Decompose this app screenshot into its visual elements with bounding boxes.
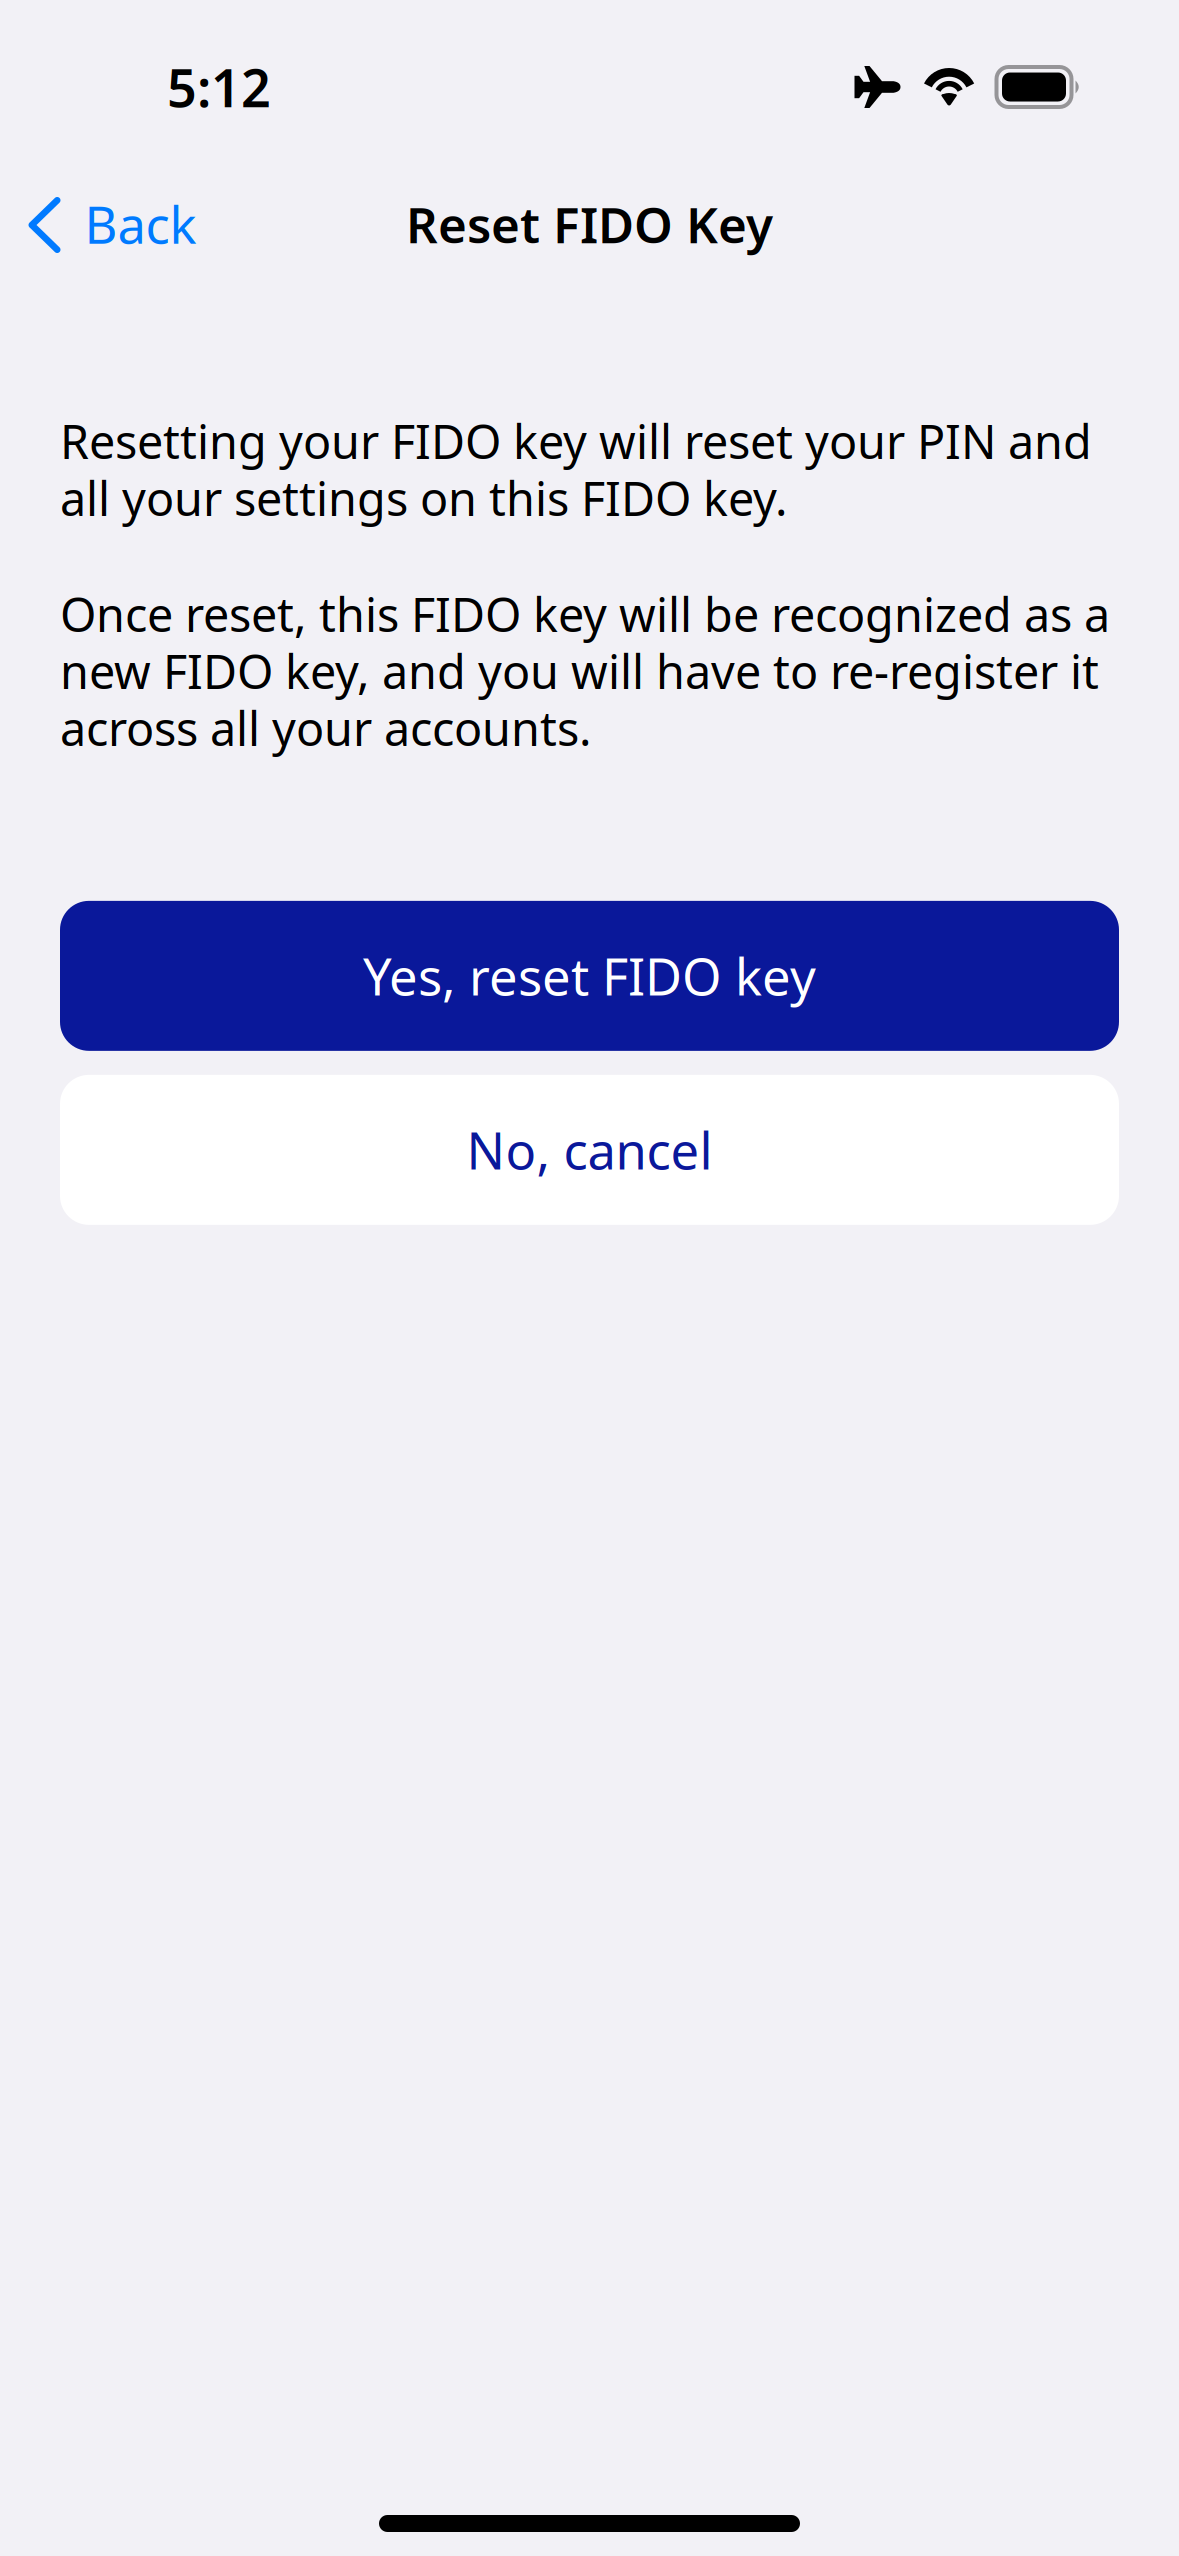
button[interactable]: Yes, reset FIDO key (60, 901, 1119, 1051)
staticText: No, cancel (466, 1116, 712, 1183)
staticText: 5:12 (167, 52, 271, 122)
staticText: Once reset, this FIDO key will be recogn… (60, 583, 1110, 759)
staticText: Back (84, 190, 196, 258)
staticText: Yes, reset FIDO key (363, 942, 816, 1009)
staticText: Reset FIDO Key (406, 191, 773, 257)
button[interactable]: No, cancel (60, 1075, 1119, 1225)
staticText: Resetting your FIDO key will reset your … (60, 410, 1092, 529)
button[interactable]: Back (0, 176, 225, 272)
